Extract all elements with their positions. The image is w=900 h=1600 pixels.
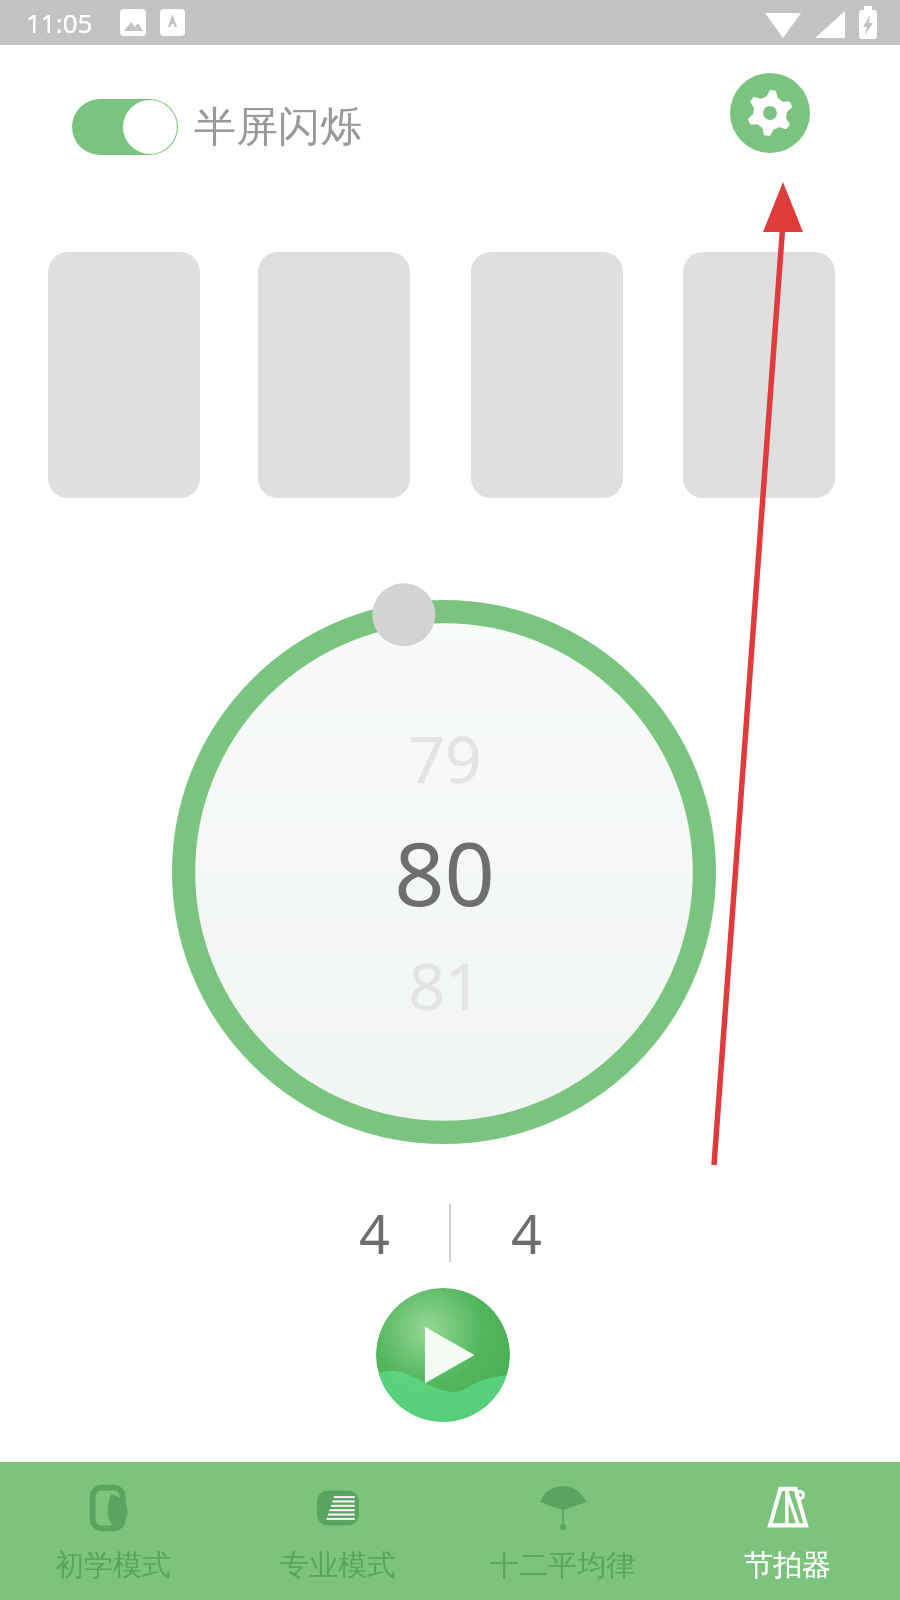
staticText: 初学模式 — [55, 1547, 171, 1584]
button[interactable]: 4 — [299, 1192, 449, 1274]
button[interactable]: 初学模式 — [0, 1462, 225, 1600]
staticText: 半屏闪烁 — [194, 101, 362, 154]
button[interactable] — [683, 252, 835, 498]
staticText: 81 — [408, 942, 482, 1029]
staticText: 节拍器 — [744, 1547, 831, 1584]
button[interactable]: 专业模式 — [225, 1462, 450, 1600]
staticText: 11:05 — [26, 5, 93, 40]
button[interactable]: 79 — [168, 596, 720, 1148]
staticText: 4 — [359, 1196, 390, 1270]
button[interactable]: 半屏闪烁 — [72, 99, 362, 155]
staticText: 十二平均律 — [490, 1547, 635, 1584]
button[interactable]: 十二平均律 — [450, 1462, 675, 1600]
staticText: 4 — [511, 1196, 542, 1270]
staticText: 专业模式 — [280, 1547, 396, 1584]
staticText: 79 — [408, 715, 482, 802]
button[interactable]: 节拍器 — [675, 1462, 900, 1600]
button[interactable]: 4 — [451, 1192, 601, 1274]
staticText: 80 — [394, 812, 495, 932]
button[interactable]: Play — [376, 1288, 510, 1422]
button[interactable]: Settings — [730, 73, 810, 153]
